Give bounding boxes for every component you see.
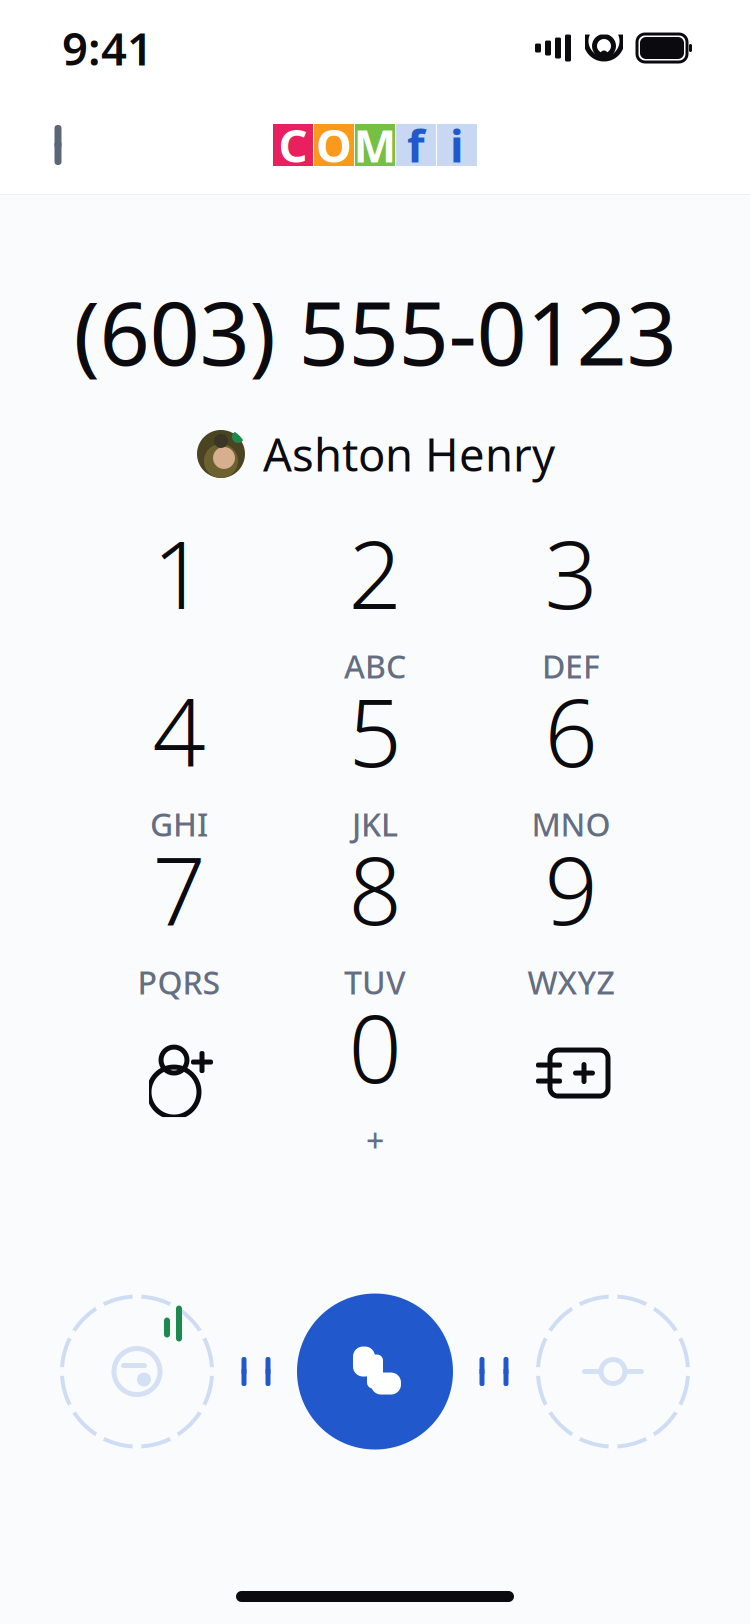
button[interactable]: 6 <box>473 678 669 836</box>
staticText: 9 <box>544 827 597 951</box>
staticText: PQRS <box>137 961 220 1003</box>
staticText: DEF <box>542 645 600 687</box>
staticText: 1 <box>152 511 205 635</box>
button[interactable]: 0 <box>277 994 473 1152</box>
staticText: 9:41 <box>62 18 153 78</box>
staticText: i <box>450 115 464 175</box>
staticText: 8 <box>348 827 401 951</box>
staticText: + <box>366 1119 384 1161</box>
staticText: 4 <box>152 669 205 793</box>
staticText: O <box>316 115 352 175</box>
button[interactable]: 2 <box>277 520 473 678</box>
button[interactable]: Add contact <box>81 994 277 1152</box>
staticText: 7 <box>152 827 205 951</box>
button[interactable]: Internet call selected <box>51 1285 223 1457</box>
button[interactable]: 5 <box>277 678 473 836</box>
staticText: ABC <box>344 645 406 687</box>
button[interactable]: Call settings <box>527 1285 699 1457</box>
button[interactable]: 9 <box>473 836 669 994</box>
button[interactable]: 8 <box>277 836 473 994</box>
staticText: GHI <box>150 803 208 845</box>
button[interactable]: Next option <box>455 1335 527 1407</box>
button[interactable]: Previous option <box>223 1335 295 1407</box>
button[interactable]: Call <box>295 1291 455 1451</box>
button[interactable]: 3 <box>473 520 669 678</box>
button[interactable]: 7 <box>81 836 277 994</box>
staticText: 6 <box>544 669 597 793</box>
staticText: 2 <box>348 511 401 635</box>
staticText: JKL <box>352 803 398 845</box>
staticText: MNO <box>531 803 610 845</box>
staticText: 5 <box>348 669 401 793</box>
staticText: TUV <box>344 961 406 1003</box>
staticText: 0 <box>348 985 401 1109</box>
button[interactable]: 4 <box>81 678 277 836</box>
staticText: (603) 555-0123 <box>73 273 676 390</box>
staticText: M <box>353 115 396 175</box>
staticText: WXYZ <box>527 961 614 1003</box>
button[interactable]: Delete <box>473 994 669 1152</box>
staticText: f <box>407 115 425 175</box>
button[interactable]: Back <box>24 107 100 183</box>
button[interactable]: 1 <box>81 520 277 678</box>
staticText: 3 <box>544 511 597 635</box>
staticText: Ashton Henry <box>263 424 555 484</box>
staticText: C <box>278 115 307 175</box>
